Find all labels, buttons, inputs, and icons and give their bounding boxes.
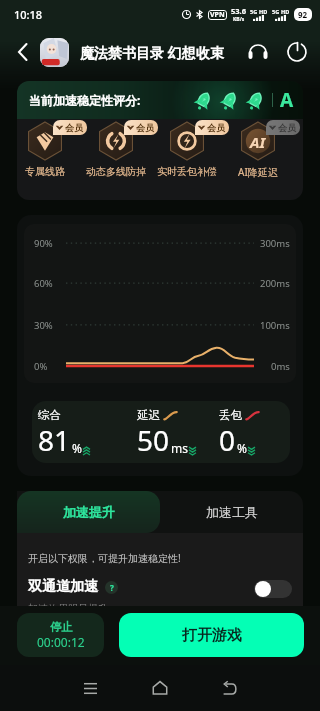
staticText: A — [280, 87, 294, 113]
staticText: AI — [250, 132, 266, 152]
button[interactable]: Back — [202, 665, 258, 711]
staticText: 延迟 — [137, 408, 160, 422]
staticText: 81 — [38, 421, 71, 459]
button[interactable]: 加速提升 — [17, 491, 160, 533]
button[interactable]: AI — [222, 119, 293, 179]
staticText: VPN — [210, 10, 225, 20]
button[interactable]: 停止 — [17, 613, 104, 657]
staticText: 会员 — [207, 122, 225, 133]
staticText: 100ms — [260, 319, 290, 332]
staticText: % — [237, 440, 247, 456]
button[interactable]: 会员 — [17, 119, 80, 178]
staticText: 60% — [34, 277, 53, 290]
staticText: 53.6 — [231, 6, 246, 16]
staticText: 双通道加速 — [28, 578, 98, 596]
staticText: 300ms — [260, 237, 290, 250]
staticText: 0 — [219, 421, 236, 459]
button[interactable]: 会员 — [80, 119, 151, 178]
staticText: 会员 — [65, 122, 83, 133]
button[interactable]: Back — [2, 34, 38, 70]
button[interactable]: Recents — [62, 665, 118, 711]
staticText: 30% — [34, 319, 53, 332]
staticText: 动态多线防掉 — [86, 165, 146, 178]
staticText: 实时丢包补偿 — [157, 165, 217, 178]
staticText: 会员 — [136, 122, 154, 133]
staticText: 加速工具 — [206, 504, 258, 520]
button[interactable]: 会员 — [151, 119, 222, 178]
staticText: 00:00:12 — [37, 634, 85, 650]
staticText: ? — [110, 582, 114, 593]
button[interactable]: Help — [105, 581, 118, 594]
staticText: 0% — [34, 360, 48, 373]
staticText: HD — [281, 8, 290, 15]
staticText: 加速提升 — [63, 504, 115, 520]
staticText: 魔法禁书目录 幻想收束 — [80, 43, 224, 62]
staticText: 5G — [250, 8, 258, 15]
staticText: 90% — [34, 237, 53, 250]
staticText: 当前加速稳定性评分: — [29, 92, 141, 108]
staticText: 打开游戏 — [182, 626, 242, 645]
staticText: % — [72, 440, 82, 456]
button[interactable]: 加速工具 — [160, 491, 303, 533]
button[interactable]: Toggle dual channel — [254, 580, 292, 598]
staticText: 停止 — [50, 620, 73, 634]
staticText: AI降延迟 — [238, 165, 278, 179]
staticText: 丢包 — [219, 408, 242, 422]
staticText: ms — [171, 440, 188, 456]
staticText: 92 — [298, 9, 308, 20]
staticText: 5G — [272, 8, 280, 15]
staticText: 加速效果明显提升 — [28, 602, 108, 606]
staticText: 50 — [137, 421, 170, 459]
staticText: 会员 — [278, 122, 296, 133]
staticText: KB/s — [233, 16, 245, 23]
button[interactable]: Refresh — [282, 37, 312, 67]
staticText: 开启以下权限，可提升加速稳定性! — [28, 551, 181, 565]
staticText: 综合 — [38, 408, 61, 422]
staticText: 0ms — [271, 360, 290, 373]
staticText: 10:18 — [14, 7, 43, 22]
staticText: HD — [259, 8, 268, 15]
button[interactable]: 打开游戏 — [119, 613, 304, 657]
button[interactable]: Home — [132, 665, 188, 711]
button[interactable]: Headset — [243, 37, 273, 67]
staticText: 专属线路 — [25, 165, 65, 178]
staticText: 200ms — [260, 277, 290, 290]
